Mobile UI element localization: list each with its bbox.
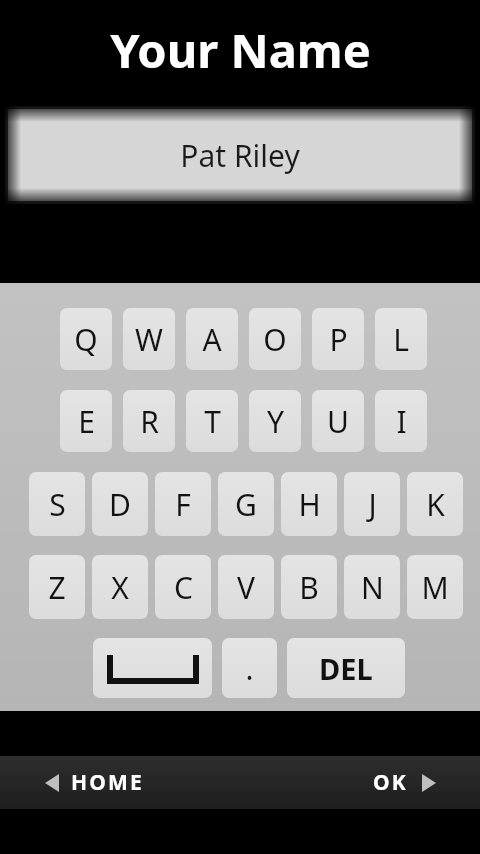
- button[interactable]: E: [60, 390, 112, 452]
- button[interactable]: OK: [373, 768, 436, 797]
- staticText: Your Name: [110, 18, 371, 82]
- staticText: D: [109, 484, 131, 525]
- staticText: R: [140, 401, 159, 442]
- staticText: S: [49, 484, 66, 525]
- button[interactable]: I: [375, 390, 427, 452]
- button[interactable]: F: [155, 472, 211, 536]
- staticText: G: [235, 484, 257, 525]
- button[interactable]: H: [281, 472, 337, 536]
- button[interactable]: N: [344, 555, 400, 619]
- staticText: Y: [267, 401, 284, 442]
- button[interactable]: Q: [60, 308, 112, 370]
- button[interactable]: [93, 638, 212, 698]
- button[interactable]: X: [92, 555, 148, 619]
- button[interactable]: G: [218, 472, 274, 536]
- button[interactable]: R: [123, 390, 175, 452]
- staticText: L: [393, 319, 409, 360]
- button[interactable]: M: [407, 555, 463, 619]
- button[interactable]: W: [123, 308, 175, 370]
- staticText: .: [245, 648, 254, 689]
- button[interactable]: Z: [29, 555, 85, 619]
- staticText: U: [327, 401, 349, 442]
- staticText: W: [135, 319, 163, 360]
- staticText: X: [111, 567, 129, 608]
- staticText: P: [329, 319, 348, 360]
- button[interactable]: O: [249, 308, 301, 370]
- staticText: DEL: [319, 649, 373, 688]
- button[interactable]: Y: [249, 390, 301, 452]
- button[interactable]: Pat Riley: [5, 106, 475, 204]
- staticText: T: [204, 401, 221, 442]
- button[interactable]: K: [407, 472, 463, 536]
- staticText: H: [298, 484, 321, 525]
- staticText: K: [426, 484, 445, 525]
- button[interactable]: L: [375, 308, 427, 370]
- button[interactable]: HOME: [45, 756, 480, 809]
- button[interactable]: J: [344, 472, 400, 536]
- staticText: V: [237, 567, 255, 608]
- staticText: E: [78, 401, 95, 442]
- button[interactable]: B: [281, 555, 337, 619]
- staticText: O: [263, 319, 287, 360]
- staticText: Z: [48, 567, 66, 608]
- staticText: I: [396, 401, 407, 442]
- staticText: M: [421, 567, 449, 608]
- staticText: J: [368, 484, 377, 525]
- button[interactable]: .: [222, 638, 277, 698]
- button[interactable]: T: [186, 390, 238, 452]
- button[interactable]: DEL: [287, 638, 405, 698]
- button[interactable]: P: [312, 308, 364, 370]
- button[interactable]: A: [186, 308, 238, 370]
- staticText: HOME: [71, 768, 145, 797]
- button[interactable]: U: [312, 390, 364, 452]
- staticText: A: [202, 319, 222, 360]
- button[interactable]: S: [29, 472, 85, 536]
- button[interactable]: D: [92, 472, 148, 536]
- staticText: B: [299, 567, 319, 608]
- button[interactable]: V: [218, 555, 274, 619]
- staticText: Q: [74, 319, 98, 360]
- staticText: C: [174, 567, 193, 608]
- staticText: F: [175, 484, 191, 525]
- staticText: Pat Riley: [180, 135, 300, 176]
- staticText: N: [361, 567, 384, 608]
- staticText: OK: [373, 768, 408, 797]
- button[interactable]: C: [155, 555, 211, 619]
